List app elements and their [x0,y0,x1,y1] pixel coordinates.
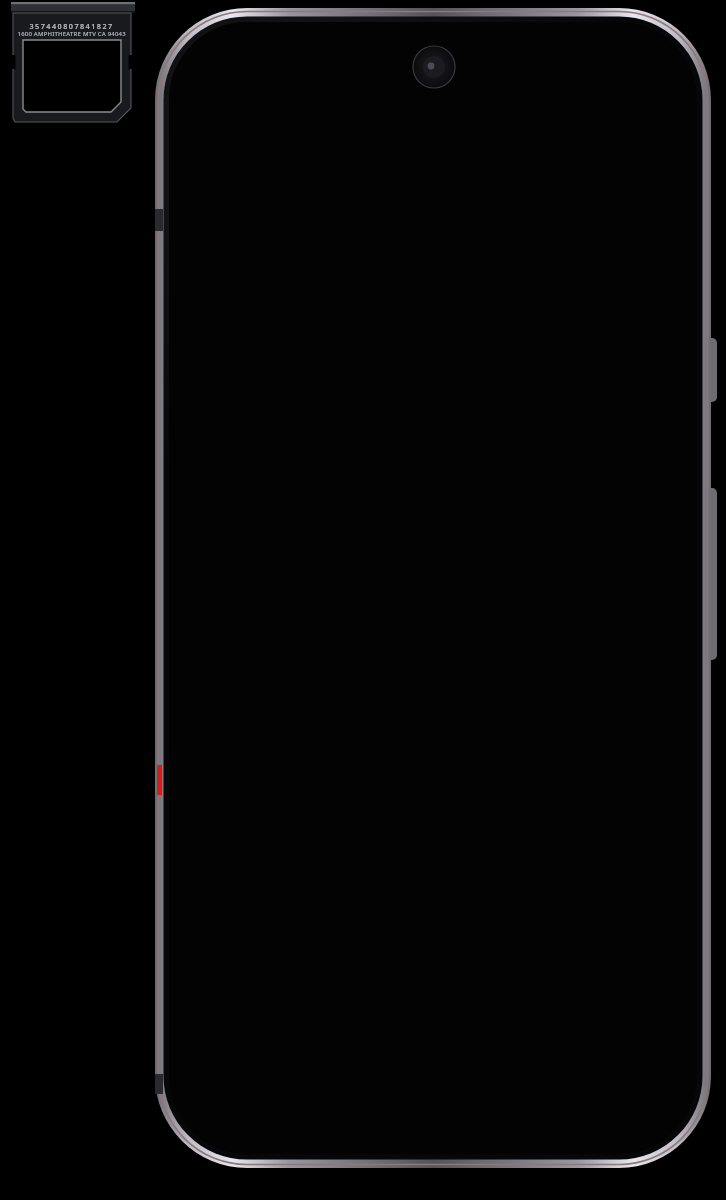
button[interactable]: Phone with SIM tray product photo [0,0,726,1200]
